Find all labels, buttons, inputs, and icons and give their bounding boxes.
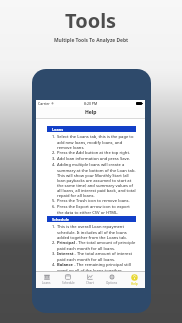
staticText: 4. [52, 262, 57, 268]
staticText: Press the Add button at the top right. [57, 150, 131, 156]
button[interactable]: Schedule [57, 272, 79, 288]
staticText: Principal - The total amount of principl… [57, 240, 136, 251]
staticText: Select the Loans tab, this is the page t… [57, 134, 136, 150]
staticText: 3. [52, 251, 57, 257]
staticText: 3. [52, 156, 57, 162]
staticText: Chart [86, 281, 94, 285]
staticText: 1. [52, 134, 57, 140]
staticText: Interest - The total amount of interest … [57, 251, 136, 262]
staticText: 6. [52, 204, 57, 210]
staticText: Multiple Tools To Analyze Debt [54, 37, 129, 44]
staticText: 8:20 PM [84, 101, 98, 106]
staticText: Loans [52, 127, 64, 132]
button[interactable]: Loans [36, 272, 57, 288]
button[interactable]: Options [101, 272, 123, 288]
staticText: Options [106, 281, 118, 285]
staticText: This is the overall Loan repayment sched… [57, 224, 136, 240]
staticText: Add loan information and press Save. [57, 156, 131, 162]
staticText: Carrier [38, 101, 50, 106]
staticText: Schedule [52, 217, 70, 222]
staticText: 2. [52, 150, 57, 156]
staticText: 5. [52, 198, 57, 204]
staticText: Tools [65, 7, 117, 34]
staticText: Loans [42, 281, 51, 285]
staticText: Press the Export arrow icon to export th… [57, 204, 136, 215]
staticText: 2. [52, 240, 57, 246]
staticText: 1. [52, 224, 57, 230]
staticText: Adding multiple loans will create a summ… [57, 162, 136, 198]
staticText: 4. [52, 162, 57, 168]
button[interactable]: Chart [79, 272, 101, 288]
staticText: Schedule [62, 281, 75, 285]
staticText: Press the Trash icon to remove loans. [57, 198, 130, 204]
staticText: Help [85, 109, 97, 116]
staticText: Balance - The remaining principal still … [57, 262, 136, 271]
staticText: Help [131, 282, 138, 286]
button[interactable]: Help [123, 272, 145, 288]
